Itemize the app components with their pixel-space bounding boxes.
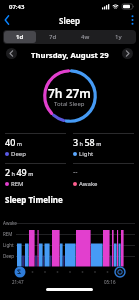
staticText: 07:43 xyxy=(9,3,25,11)
staticText: Light xyxy=(79,150,94,158)
staticText: Awake xyxy=(3,220,17,226)
button[interactable]: 7d xyxy=(36,31,69,43)
button[interactable] xyxy=(122,48,133,59)
staticText: 1y xyxy=(115,33,122,41)
staticText: 2 h 49 m xyxy=(5,166,34,178)
button[interactable] xyxy=(126,12,139,28)
staticText: 7h 27m xyxy=(48,85,91,101)
staticText: REM xyxy=(11,180,24,188)
staticText: 3 h 58 m xyxy=(73,136,102,148)
staticText: Deep xyxy=(3,253,15,259)
button[interactable] xyxy=(6,48,17,59)
button[interactable]: 4w xyxy=(69,31,102,43)
staticText: 4w xyxy=(81,33,90,41)
staticText: Sleep xyxy=(59,15,81,26)
staticText: REM xyxy=(3,231,13,237)
staticText: -- xyxy=(73,167,78,177)
staticText: Total Sleep xyxy=(54,100,85,108)
staticText: Sleep Timeline xyxy=(5,194,63,205)
button[interactable]: 1d xyxy=(4,31,36,43)
staticText: Deep xyxy=(11,150,26,158)
staticText: 7d xyxy=(49,33,57,41)
button[interactable]: 1y xyxy=(102,31,135,43)
staticText: Thursday, August 29 xyxy=(31,50,109,60)
staticText: 05:16 xyxy=(104,279,116,285)
staticText: 40 m xyxy=(5,136,22,148)
staticText: 1d xyxy=(16,33,24,41)
button[interactable] xyxy=(0,12,14,28)
staticText: 21:47 xyxy=(12,279,24,285)
staticText: Light xyxy=(3,242,14,248)
staticText: Awake xyxy=(79,180,98,188)
